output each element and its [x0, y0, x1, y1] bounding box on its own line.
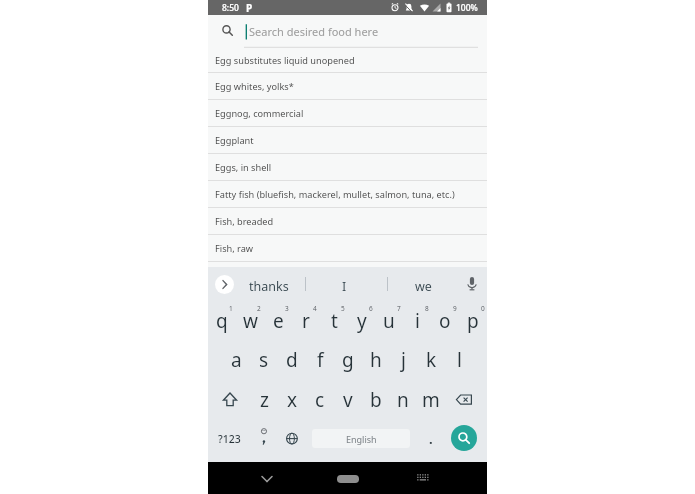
button[interactable]: a [222, 340, 250, 379]
staticText: d [286, 347, 298, 373]
staticText: n [397, 387, 409, 413]
staticText: m [422, 387, 440, 413]
button[interactable]: Fish, raw [208, 235, 487, 261]
button[interactable]: l [445, 340, 473, 379]
button[interactable]: g [334, 340, 362, 379]
staticText: Egg substitutes liquid unopened [215, 54, 355, 67]
button[interactable]: Search desired food here [208, 15, 487, 48]
staticText: 4 [313, 304, 317, 313]
staticText: x [287, 387, 298, 413]
button[interactable]: v [334, 380, 362, 419]
button[interactable] [337, 475, 359, 483]
button[interactable]: Fatty fish (bluefish, mackerel, mullet, … [208, 181, 487, 207]
staticText: w [243, 308, 258, 334]
button[interactable]: Fish, breaded [208, 208, 487, 234]
staticText: h [370, 347, 382, 373]
button[interactable]: Eggnog, commercial [208, 100, 487, 126]
staticText: v [343, 387, 353, 413]
staticText: Eggplant [215, 134, 254, 147]
button[interactable] [253, 464, 281, 492]
button[interactable]: w [236, 301, 264, 340]
staticText: b [370, 387, 382, 413]
staticText: u [383, 308, 395, 334]
staticText: Eggs, in shell [215, 161, 272, 174]
button[interactable]: d [278, 340, 306, 379]
button[interactable]: I [312, 269, 377, 303]
staticText: I [342, 278, 347, 295]
button[interactable]: n [389, 380, 417, 419]
staticText: 0 [481, 304, 485, 313]
button[interactable] [215, 275, 234, 294]
staticText: t [331, 308, 338, 334]
staticText: j [401, 347, 406, 373]
button[interactable]: f [306, 340, 334, 379]
staticText: 100% [456, 2, 478, 14]
button[interactable]: q [208, 301, 236, 340]
button[interactable] [250, 419, 278, 458]
button[interactable]: z [250, 380, 278, 419]
staticText: 3 [285, 304, 289, 313]
staticText: o [439, 308, 451, 334]
button[interactable]: ?123 [212, 419, 246, 458]
button[interactable] [409, 464, 437, 492]
button[interactable]: u [375, 301, 403, 340]
button[interactable]: Eggplant [208, 127, 487, 153]
staticText: r [302, 308, 310, 334]
button[interactable]: b [362, 380, 390, 419]
staticText: y [357, 308, 367, 334]
staticText: P [246, 1, 253, 15]
button[interactable]: English [312, 429, 410, 448]
button[interactable] [209, 380, 249, 419]
staticText: . [429, 430, 433, 448]
button[interactable]: Egg whites, yolks* [208, 73, 487, 99]
button[interactable]: x [278, 380, 306, 419]
button[interactable]: p [459, 301, 487, 340]
button[interactable]: j [389, 340, 417, 379]
button[interactable]: h [362, 340, 390, 379]
staticText: s [259, 347, 269, 373]
staticText: i [415, 308, 420, 334]
button[interactable]: c [306, 380, 334, 419]
staticText: q [216, 308, 228, 334]
staticText: 9 [453, 304, 457, 313]
button[interactable] [451, 425, 477, 451]
button[interactable]: thanks [241, 269, 297, 303]
staticText: a [231, 347, 242, 373]
staticText: Fatty fish (bluefish, mackerel, mullet, … [215, 188, 455, 201]
staticText: we [415, 278, 432, 295]
button[interactable] [444, 380, 484, 419]
button[interactable]: r [292, 301, 320, 340]
button[interactable]: t [320, 301, 348, 340]
button[interactable]: s [250, 340, 278, 379]
staticText: Fish, raw [215, 242, 254, 255]
staticText: f [317, 347, 324, 373]
button[interactable]: o [431, 301, 459, 340]
staticText: e [273, 308, 284, 334]
staticText: Search desired food here [249, 24, 379, 39]
staticText: 7 [397, 304, 401, 313]
staticText: l [457, 347, 462, 373]
staticText: 2 [257, 304, 261, 313]
staticText: 8:50 [222, 2, 239, 14]
staticText: k [426, 347, 437, 373]
button[interactable]: i [403, 301, 431, 340]
button[interactable]: we [394, 269, 452, 303]
button[interactable]: k [417, 340, 445, 379]
staticText: 6 [369, 304, 373, 313]
staticText: thanks [249, 278, 289, 295]
staticText: ?123 [218, 432, 241, 446]
staticText: Fish, breaded [215, 215, 274, 228]
staticText: English [346, 433, 377, 445]
staticText: Egg whites, yolks* [215, 80, 294, 93]
staticText: Eggnog, commercial [215, 107, 304, 120]
button[interactable]: y [348, 301, 376, 340]
button[interactable]: Egg substitutes liquid unopened [208, 48, 487, 72]
button[interactable]: Eggs, in shell [208, 154, 487, 180]
staticText: z [260, 387, 269, 413]
button[interactable]: . [417, 419, 445, 458]
staticText: 1 [229, 304, 233, 313]
button[interactable]: m [417, 380, 445, 419]
button[interactable]: e [264, 301, 292, 340]
staticText: 8 [425, 304, 429, 313]
button[interactable] [278, 419, 306, 458]
